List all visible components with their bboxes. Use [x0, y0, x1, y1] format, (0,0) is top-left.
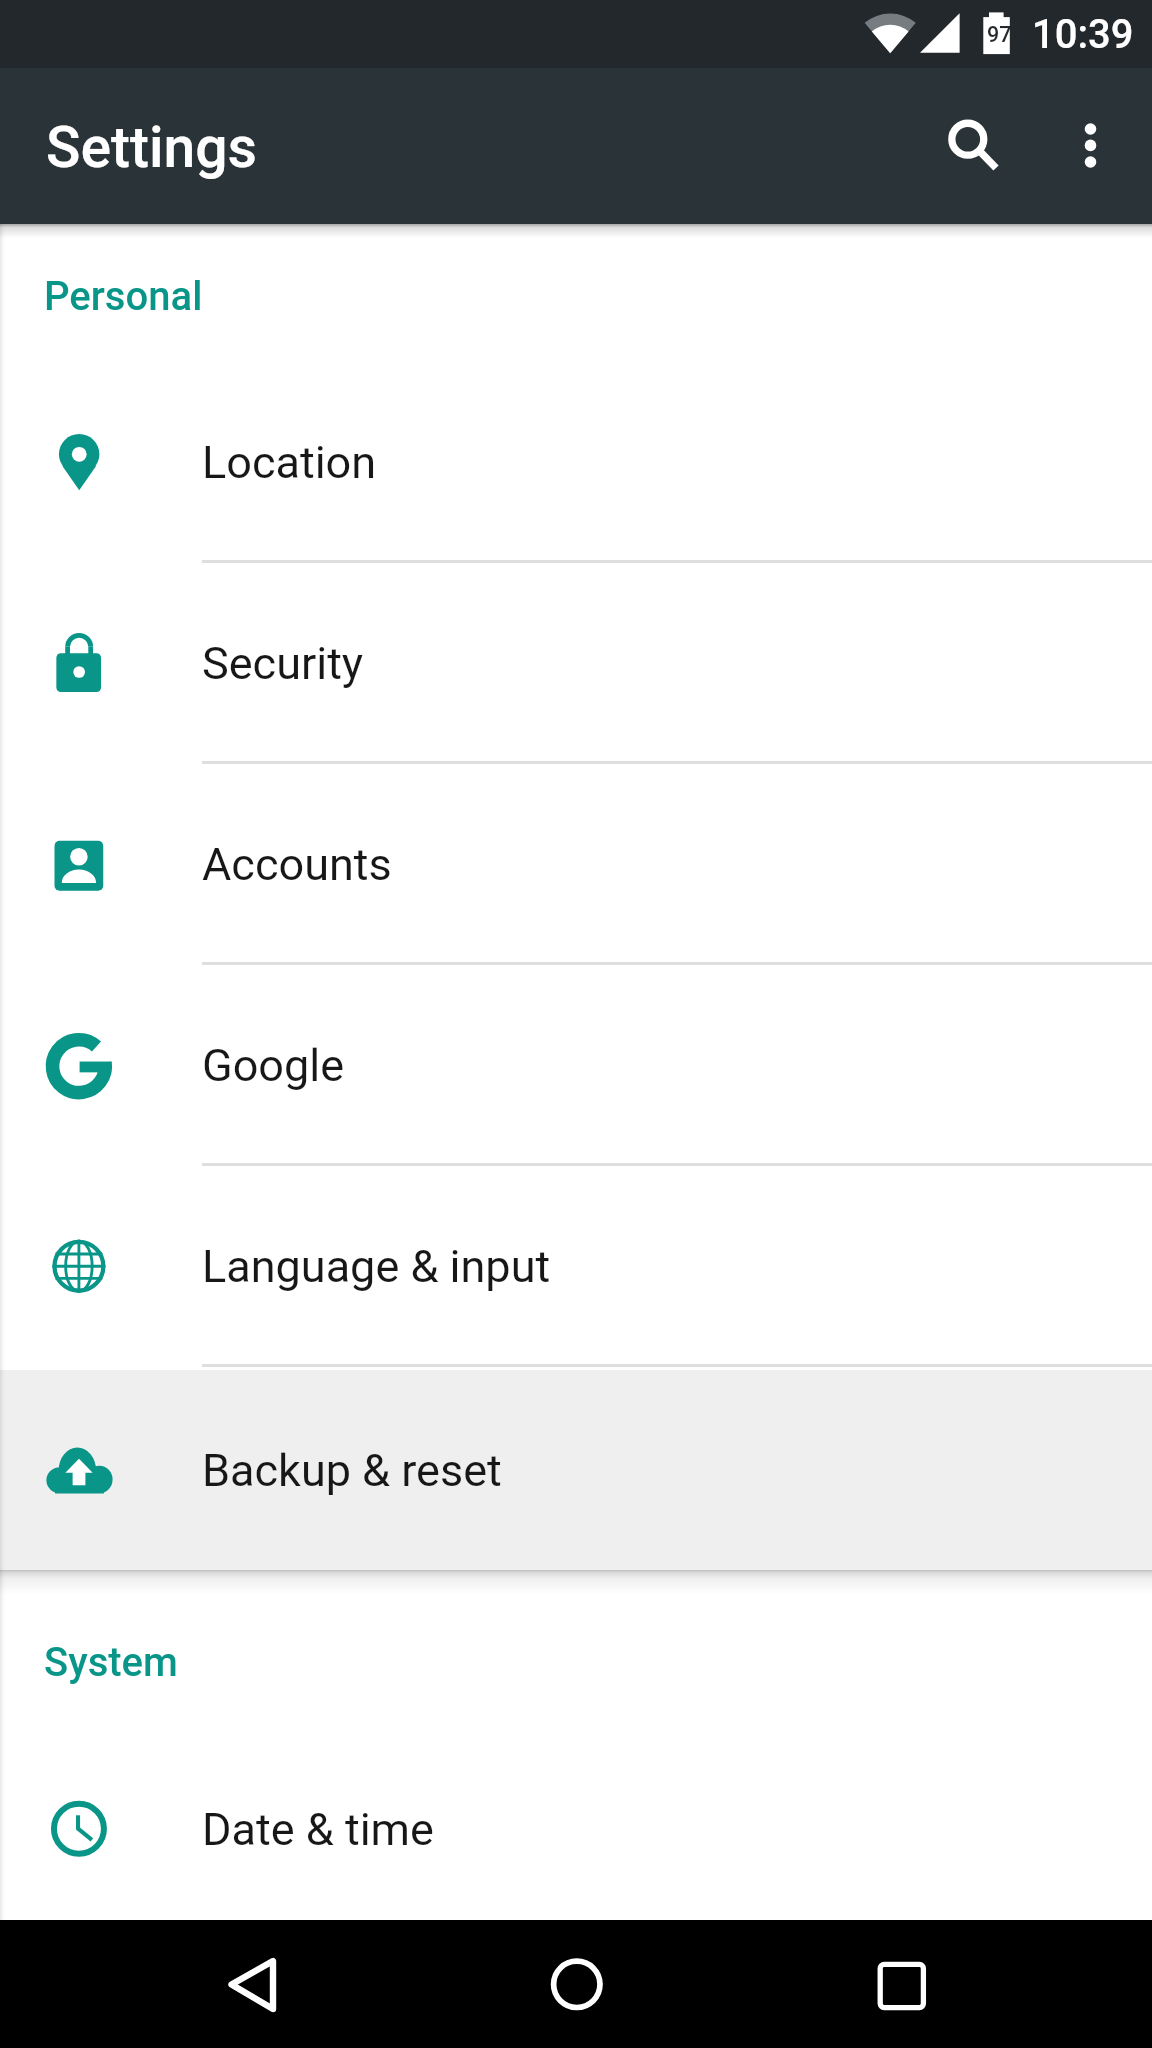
- staticText: 97: [987, 22, 1012, 47]
- button[interactable]: Back: [188, 1920, 316, 2048]
- staticText: Location: [202, 436, 377, 489]
- staticText: Language & input: [202, 1240, 551, 1293]
- staticText: System: [44, 1639, 178, 1686]
- staticText: Google: [202, 1039, 345, 1092]
- button[interactable]: More options: [1030, 78, 1150, 198]
- staticText: 10:39: [1032, 11, 1134, 58]
- staticText: Backup & reset: [202, 1444, 502, 1497]
- button[interactable]: Search: [906, 78, 1026, 198]
- staticText: Date & time: [202, 1803, 434, 1856]
- button[interactable]: Date & time: [0, 1729, 1152, 1929]
- button[interactable]: Google: [0, 965, 1152, 1165]
- staticText: Accounts: [202, 838, 392, 891]
- button[interactable]: Security: [0, 563, 1152, 763]
- button[interactable]: Location: [0, 362, 1152, 562]
- button[interactable]: Backup & reset: [0, 1370, 1152, 1570]
- button[interactable]: Accounts: [0, 764, 1152, 964]
- button[interactable]: Home: [513, 1920, 641, 2048]
- button[interactable]: Language & input: [0, 1166, 1152, 1366]
- button[interactable]: Recent apps: [837, 1920, 965, 2048]
- staticText: Security: [202, 637, 364, 690]
- staticText: Personal: [44, 273, 203, 320]
- staticText: Settings: [46, 114, 258, 181]
